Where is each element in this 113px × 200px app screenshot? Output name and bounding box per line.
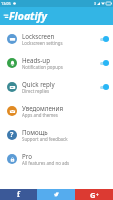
staticText: Heads-up [22,56,50,64]
staticText: Direct replies [22,88,50,94]
staticText: + [96,192,99,198]
button[interactable]: Уведомления [0,99,113,123]
staticText: Помощь [22,128,48,136]
staticText: 3 [94,1,96,6]
staticText: Floatify [9,9,47,23]
staticText: Notification popups [22,64,63,70]
staticText: Уведомления [22,104,64,112]
staticText: Pro [22,152,32,160]
button[interactable]: Quick reply [0,75,113,99]
staticText: f [17,190,20,200]
button[interactable]: Twitter [37,189,75,200]
staticText: All features and no ads [22,160,70,166]
button[interactable]: Heads-up [0,51,113,75]
button[interactable]: Lockscreen [0,27,113,51]
button[interactable]: Google Plus [75,189,113,200]
staticText: G [90,190,96,200]
staticText: Quick reply [22,80,55,88]
button[interactable]: Toggle Quick reply [99,81,110,93]
staticText: Apps and themes [22,112,58,118]
staticText: Lockscreen settings [22,40,63,46]
staticText: Support and feedback [22,136,68,142]
button[interactable]: ? [0,123,113,147]
staticText: Lockscreen [22,32,55,40]
staticText: ? [10,130,14,140]
staticText: 13:05 [1,1,11,6]
button[interactable]: Toggle Heads-up [99,57,110,69]
button[interactable]: Facebook [0,189,37,200]
button[interactable]: Toggle Lockscreen [99,33,110,45]
button[interactable]: Pro [0,147,113,171]
